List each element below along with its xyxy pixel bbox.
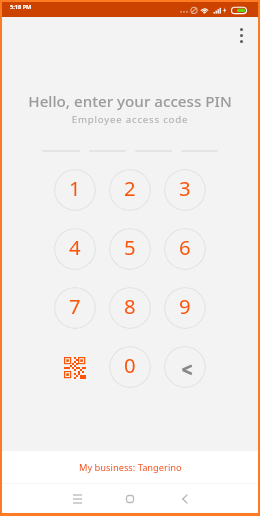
staticText: 2 (124, 174, 136, 202)
button[interactable]: Home (115, 484, 145, 513)
button[interactable]: 6 (164, 228, 206, 270)
button[interactable]: Back (169, 484, 199, 513)
staticText: 5:18 PM (10, 3, 32, 11)
button[interactable]: 9 (164, 287, 206, 329)
staticText: 0 (124, 351, 136, 379)
button[interactable]: Recents (62, 484, 92, 513)
button[interactable]: Delete (164, 346, 206, 388)
staticText: My business: Tangerino (79, 461, 182, 474)
button[interactable]: 5 (109, 228, 151, 270)
button[interactable]: 2 (109, 169, 151, 211)
staticText: 7 (69, 292, 81, 320)
button[interactable]: 0 (109, 346, 151, 388)
button[interactable]: More options (227, 21, 255, 49)
staticText: 8 (124, 292, 136, 320)
button[interactable]: 4 (54, 228, 96, 270)
staticText: Employee access code (2, 113, 258, 126)
button[interactable]: Scan QR code (54, 346, 96, 388)
staticText: Hello, enter your access PIN (2, 91, 258, 112)
staticText: 4 (69, 233, 81, 261)
button[interactable]: 7 (54, 287, 96, 329)
button[interactable]: 3 (164, 169, 206, 211)
button[interactable]: 1 (54, 169, 96, 211)
button[interactable]: 8 (109, 287, 151, 329)
staticText: 6 (179, 233, 191, 261)
staticText: 3 (179, 174, 191, 202)
staticText: 5 (124, 233, 136, 261)
staticText: 9 (179, 292, 191, 320)
staticText: 1 (69, 174, 81, 202)
